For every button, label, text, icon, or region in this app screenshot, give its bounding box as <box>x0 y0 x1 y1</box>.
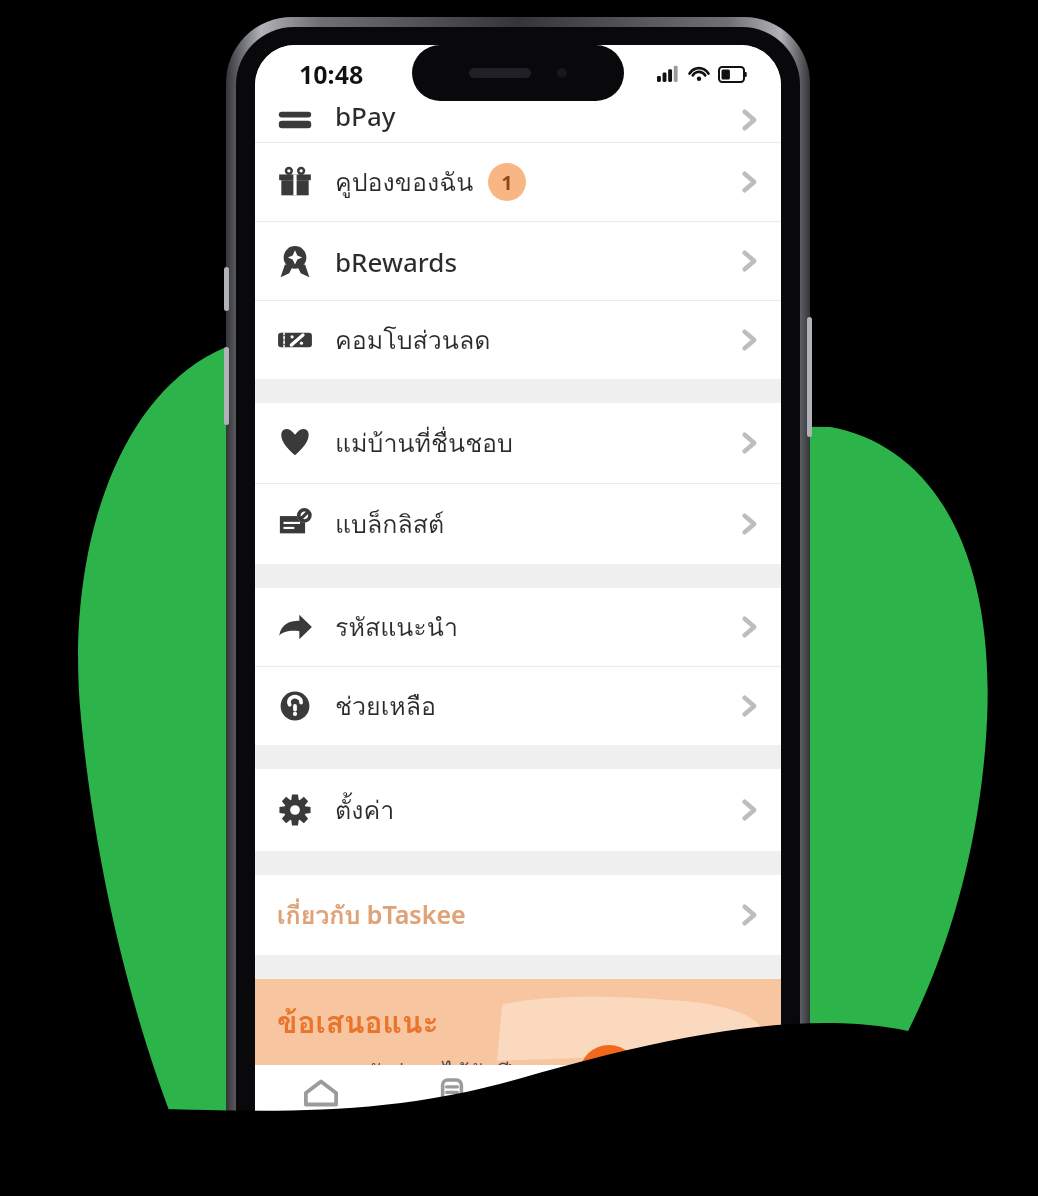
button[interactable]: bPay <box>255 97 781 142</box>
button[interactable]: รหัสแนะนำ <box>255 588 781 666</box>
staticText: 1 <box>501 169 513 196</box>
staticText: เกี่ยวกับ bTaskee <box>277 895 466 935</box>
staticText: คอมโบส่วนลด <box>335 320 491 360</box>
button[interactable]: ตั้งค่า <box>255 769 781 851</box>
staticText: แม่บ้านที่ชื่นชอบ <box>335 423 513 463</box>
staticText: รหัสแนะนำ <box>335 607 458 647</box>
button[interactable]: Home <box>255 1065 386 1151</box>
staticText: bRewards <box>335 244 458 279</box>
button[interactable]: ข้อเสนอแนะ <box>255 979 781 1065</box>
button[interactable]: คูปองของฉัน <box>255 143 781 221</box>
button[interactable]: เกี่ยวกับ bTaskee <box>255 875 781 955</box>
button[interactable]: แม่บ้านที่ชื่นชอบ <box>255 403 781 483</box>
staticText: แบล็กลิสต์ <box>335 504 445 544</box>
staticText: ตั้งค่า <box>335 790 395 830</box>
staticText: ข้อเสนอแนะ <box>277 999 439 1047</box>
staticText: bPay <box>335 98 396 133</box>
button[interactable]: ช่วยเหลือ <box>255 667 781 745</box>
staticText: 10:48 <box>299 57 364 91</box>
button[interactable]: คอมโบส่วนลด <box>255 301 781 379</box>
button[interactable]: bRewards <box>255 222 781 300</box>
button[interactable]: Orders <box>386 1065 517 1151</box>
staticText: ช่วยเหลือ <box>335 686 437 726</box>
button[interactable]: แบล็กลิสต์ <box>255 484 781 564</box>
staticText: พวกเราหวังว่าจะได้รับฟีดแบค จากคุณ เพื่อ… <box>277 1055 573 1065</box>
staticText: คูปองของฉัน <box>335 162 474 202</box>
